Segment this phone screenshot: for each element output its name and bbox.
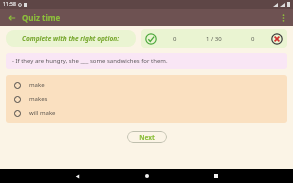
button[interactable]: Back xyxy=(5,11,19,25)
staticText: Complete with the right option: xyxy=(22,34,120,43)
button[interactable]: Recent apps xyxy=(209,169,223,183)
staticText: 11:58 xyxy=(3,1,16,8)
staticText: - If they are hungry, she ___ some sandw… xyxy=(12,57,168,65)
staticText: Quiz time xyxy=(22,12,61,23)
button[interactable]: Home xyxy=(140,169,154,183)
button[interactable]: More options xyxy=(276,11,290,25)
button[interactable]: make xyxy=(6,78,287,92)
staticText: 1 / 30 xyxy=(206,35,222,43)
staticText: makes xyxy=(29,95,48,103)
staticText: Next xyxy=(139,133,155,142)
button[interactable]: Next xyxy=(127,131,167,143)
button[interactable]: will make xyxy=(6,106,287,120)
button[interactable]: Back xyxy=(70,169,84,183)
staticText: 0 xyxy=(173,35,177,43)
staticText: will make xyxy=(29,109,56,117)
staticText: make xyxy=(29,81,45,89)
staticText: 0 xyxy=(251,35,255,43)
button[interactable]: makes xyxy=(6,92,287,106)
